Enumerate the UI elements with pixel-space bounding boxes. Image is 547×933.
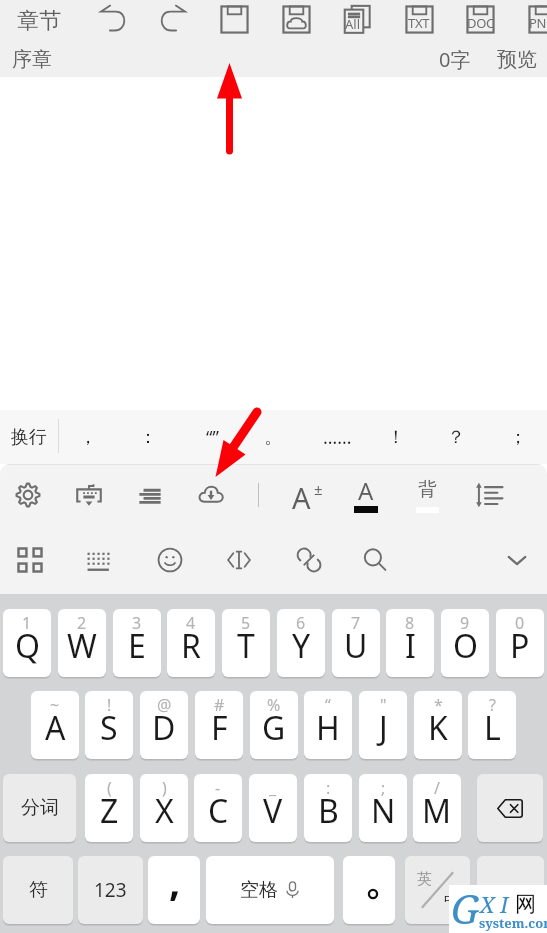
button[interactable]: 分词	[3, 774, 76, 842]
button[interactable]: _	[249, 774, 297, 842]
staticText: 4	[186, 612, 196, 634]
staticText: 中	[444, 891, 459, 910]
button[interactable]: ……	[309, 410, 365, 464]
button[interactable]: "	[359, 691, 407, 759]
button[interactable]: Save to cloud	[266, 0, 326, 42]
button[interactable]: 。	[245, 410, 301, 464]
button[interactable]: Export PNG	[512, 0, 547, 42]
button[interactable]: Export DOC	[450, 0, 510, 42]
staticText: 换行	[11, 426, 47, 449]
button[interactable]: 6	[277, 609, 325, 677]
button[interactable]: *	[414, 691, 462, 759]
button[interactable]: 8	[386, 609, 434, 677]
button[interactable]: Switch language	[405, 856, 470, 924]
button[interactable]: “”	[184, 410, 240, 464]
button[interactable]: Save	[204, 0, 264, 42]
button[interactable]: 7	[332, 609, 380, 677]
button[interactable]: ,	[148, 856, 200, 924]
staticText: B	[318, 789, 339, 833]
button[interactable]: ；	[490, 410, 546, 464]
button[interactable]: ，	[60, 410, 116, 464]
staticText: 123	[94, 877, 127, 903]
button[interactable]: ;	[359, 774, 407, 842]
button[interactable]: Font size	[278, 468, 332, 522]
button[interactable]: @	[140, 691, 188, 759]
button[interactable]: “	[304, 691, 352, 759]
button[interactable]: (	[85, 774, 133, 842]
button[interactable]: Link	[282, 533, 336, 587]
button[interactable]: 预览	[497, 47, 537, 72]
staticText: %	[267, 694, 281, 716]
button[interactable]: 1	[3, 609, 51, 677]
staticText: A	[292, 478, 311, 517]
button[interactable]: )	[140, 774, 188, 842]
staticText: 分词	[21, 796, 59, 820]
button[interactable]: Redo	[143, 0, 203, 42]
button[interactable]: 5	[222, 609, 270, 677]
button[interactable]: Panels	[3, 533, 57, 587]
staticText: 3	[132, 612, 142, 634]
button[interactable]: Align	[123, 468, 177, 522]
button[interactable]: %	[250, 691, 298, 759]
staticText: ?	[489, 694, 496, 716]
button[interactable]: Cursor	[212, 533, 266, 587]
button[interactable]: 123	[78, 856, 143, 924]
staticText: 5	[241, 612, 251, 634]
button[interactable]: Export all	[327, 0, 387, 42]
button[interactable]: !	[85, 691, 133, 759]
staticText: 空格	[240, 878, 278, 902]
staticText: @	[157, 694, 172, 716]
button[interactable]: Line height	[462, 468, 516, 522]
staticText: M	[422, 789, 452, 833]
button[interactable]	[343, 856, 395, 924]
button[interactable]: Enter	[477, 856, 544, 924]
staticText: E	[128, 624, 146, 668]
button[interactable]: 符	[3, 856, 73, 924]
button[interactable]: Background	[400, 468, 454, 522]
button[interactable]: Keyboard	[62, 468, 116, 522]
button[interactable]: Undo	[82, 0, 142, 42]
button[interactable]: Text color	[339, 468, 393, 522]
staticText: ±	[314, 479, 323, 499]
button[interactable]: ？	[428, 410, 484, 464]
button[interactable]: Emoji	[143, 533, 197, 587]
button[interactable]: 章节	[0, 0, 78, 42]
staticText: 序章	[12, 47, 52, 72]
staticText: H	[316, 706, 340, 750]
button[interactable]: -	[194, 774, 242, 842]
staticText: ;	[381, 777, 386, 799]
button[interactable]: Export TXT	[389, 0, 449, 42]
button[interactable]: Keypad	[72, 533, 126, 587]
button[interactable]: 换行	[0, 410, 58, 464]
button[interactable]: Download	[184, 468, 238, 522]
staticText: ？	[447, 426, 465, 449]
staticText: 8	[405, 612, 415, 634]
button[interactable]: 空格	[206, 856, 334, 924]
button[interactable]: 2	[58, 609, 106, 677]
staticText: L	[484, 706, 501, 750]
staticText: K	[428, 706, 448, 750]
button[interactable]: Backspace	[477, 774, 543, 842]
button[interactable]: 4	[167, 609, 215, 677]
button[interactable]: ?	[468, 691, 516, 759]
staticText: /	[434, 777, 440, 799]
staticText: 7	[351, 612, 361, 634]
button[interactable]: Search	[348, 533, 402, 587]
button[interactable]: ~	[31, 691, 79, 759]
staticText: ，	[79, 426, 97, 449]
staticText: 6	[296, 612, 306, 634]
button[interactable]: :	[304, 774, 352, 842]
button[interactable]: 9	[441, 609, 489, 677]
button[interactable]: Settings	[1, 468, 55, 522]
button[interactable]: ：	[120, 410, 176, 464]
button[interactable]: 0	[496, 609, 544, 677]
staticText: 。	[264, 426, 282, 449]
button[interactable]: 3	[113, 609, 161, 677]
staticText: D	[152, 706, 176, 750]
staticText: “	[325, 694, 331, 716]
button[interactable]: /	[413, 774, 461, 842]
button[interactable]: #	[195, 691, 243, 759]
button[interactable]: ！	[368, 410, 424, 464]
button[interactable]: Collapse keyboard	[490, 533, 544, 587]
staticText: *	[434, 694, 443, 716]
